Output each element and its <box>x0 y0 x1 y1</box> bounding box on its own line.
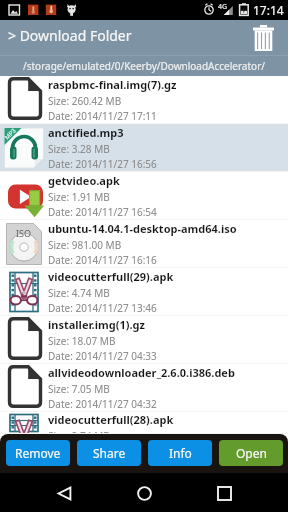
staticText: 4G <box>218 2 228 12</box>
button[interactable]: Remove <box>6 440 70 466</box>
staticText: Open <box>236 445 267 461</box>
staticText: Size: 1.91 MB <box>48 190 110 204</box>
staticText: raspbmc-final.img(7).gz <box>48 77 177 92</box>
button[interactable]: Home <box>129 478 159 508</box>
button[interactable]: Open <box>219 440 283 466</box>
staticText: anctified.mp3 <box>48 125 124 140</box>
button[interactable]: ISO <box>0 220 288 268</box>
staticText: videocutterfull(28).apk <box>48 412 174 427</box>
staticText: Size: 4.74 MB <box>48 286 110 300</box>
button[interactable]: getvideo.apk <box>0 172 288 220</box>
staticText: Date: 2014/11/27 17:11 <box>48 109 157 123</box>
button[interactable]: Info <box>148 440 212 466</box>
staticText: Size: 18.07 MB <box>48 334 116 348</box>
button[interactable]: Back <box>49 478 79 508</box>
staticText: Date: 2014/11/27 16:54 <box>48 205 157 219</box>
staticText: Share <box>93 445 126 461</box>
button[interactable]: MP3 <box>0 124 288 172</box>
staticText: installer.img(1).gz <box>48 317 145 332</box>
staticText: 17:14 <box>253 2 284 18</box>
button[interactable]: installer.img(1).gz <box>0 316 288 364</box>
staticText: > Download Folder <box>8 26 132 45</box>
staticText: Info <box>169 445 192 461</box>
staticText: /storage/emulated/0/Keerby/DownloadAccel… <box>23 59 265 73</box>
staticText: ubuntu-14.04.1-desktop-amd64.iso <box>48 221 237 236</box>
staticText: Size: 7.05 MB <box>48 382 110 396</box>
button[interactable]: Share <box>77 440 141 466</box>
staticText: Date: 2014/11/27 16:16 <box>48 253 157 267</box>
staticText: Remove <box>15 445 61 461</box>
button[interactable]: allvideodownloader_2.6.0.i386.deb <box>0 364 288 412</box>
button[interactable]: raspbmc-final.img(7).gz <box>0 76 288 124</box>
staticText: Date: 2014/11/27 04:32 <box>48 397 157 411</box>
staticText: Size: 981.00 MB <box>48 238 122 252</box>
staticText: allvideodownloader_2.6.0.i386.deb <box>48 365 235 380</box>
button[interactable]: videocutterfull(29).apk <box>0 268 288 316</box>
staticText: MP3 <box>3 127 18 141</box>
staticText: Size: 260.42 MB <box>48 94 122 108</box>
staticText: Date: 2014/11/27 13:46 <box>48 301 157 315</box>
button[interactable]: Delete <box>250 25 276 51</box>
button[interactable]: Recents <box>209 478 239 508</box>
staticText: ISO <box>16 227 32 239</box>
staticText: Size: 3.28 MB <box>48 142 110 156</box>
button[interactable]: videocutterfull(28).apk <box>0 412 288 434</box>
staticText: getvideo.apk <box>48 173 120 188</box>
staticText: Size: 2.74 MB <box>48 429 110 434</box>
staticText: Date: 2014/11/27 04:33 <box>48 349 157 363</box>
staticText: Date: 2014/11/27 16:56 <box>48 157 157 171</box>
staticText: videocutterfull(29).apk <box>48 269 174 284</box>
